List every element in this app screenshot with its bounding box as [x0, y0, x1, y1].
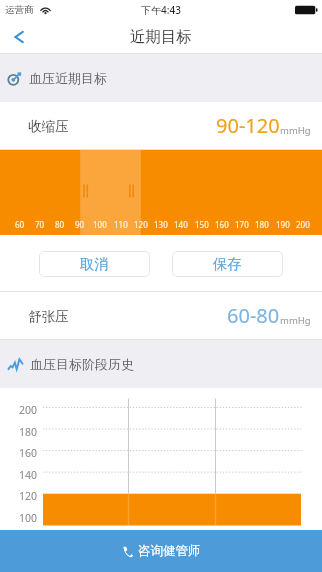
- staticText: 200: [19, 403, 38, 417]
- staticText: mmHg: [280, 314, 311, 327]
- staticText: 180: [255, 219, 269, 230]
- staticText: 取消: [80, 255, 109, 273]
- staticText: 140: [19, 468, 38, 482]
- staticText: 120: [19, 489, 38, 503]
- staticText: 收缩压: [28, 118, 69, 135]
- staticText: 近期目标: [130, 27, 192, 47]
- button[interactable]: 咨询健管师: [0, 530, 322, 572]
- staticText: 血压目标阶段历史: [30, 356, 134, 372]
- button[interactable]: 保存: [172, 251, 283, 277]
- staticText: 160: [19, 446, 38, 460]
- button[interactable]: 舒张压: [0, 292, 322, 340]
- staticText: 100: [93, 219, 107, 230]
- staticText: 120: [134, 219, 148, 230]
- staticText: 170: [235, 219, 249, 230]
- button[interactable]: 收缩压: [0, 102, 322, 150]
- staticText: 150: [195, 219, 209, 230]
- staticText: 下午4:43: [141, 3, 181, 17]
- staticText: 运营商: [5, 4, 34, 16]
- staticText: 保存: [213, 255, 242, 273]
- staticText: 140: [174, 219, 188, 230]
- staticText: 100: [19, 511, 38, 525]
- staticText: 60: [15, 219, 25, 230]
- staticText: 90: [75, 219, 85, 230]
- button[interactable]: 取消: [39, 251, 150, 277]
- staticText: 130: [154, 219, 168, 230]
- staticText: 80: [55, 219, 65, 230]
- staticText: 110: [114, 219, 128, 230]
- staticText: mmHg: [280, 124, 311, 137]
- staticText: 160: [215, 219, 229, 230]
- button[interactable]: 返回: [3, 21, 35, 53]
- staticText: 咨询健管师: [138, 543, 201, 559]
- staticText: 200: [296, 219, 310, 230]
- staticText: 190: [276, 219, 290, 230]
- staticText: 180: [19, 425, 38, 439]
- staticText: 60-80: [227, 302, 280, 329]
- staticText: 70: [35, 219, 45, 230]
- staticText: 90-120: [216, 112, 280, 139]
- staticText: 舒张压: [28, 308, 69, 325]
- staticText: 血压近期目标: [29, 70, 107, 86]
